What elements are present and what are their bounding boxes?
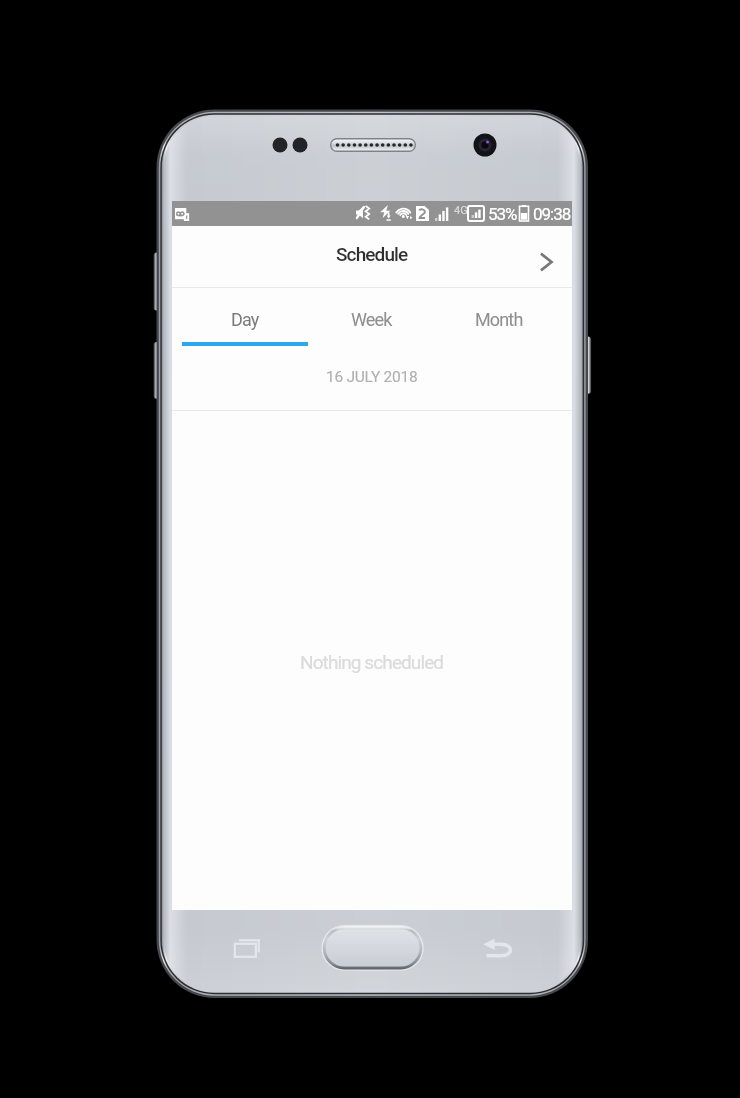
staticText: 16 JULY 2018: [326, 368, 418, 386]
button[interactable]: Open: [526, 242, 566, 282]
button[interactable]: Day: [182, 288, 308, 348]
staticText: 53%: [488, 204, 517, 224]
button[interactable]: Week: [308, 288, 435, 348]
staticText: Month: [475, 309, 523, 330]
button[interactable]: Month: [435, 288, 562, 348]
staticText: Day: [231, 309, 259, 330]
staticText: Schedule: [336, 243, 408, 265]
staticText: Week: [351, 309, 392, 330]
staticText: 4G: [454, 204, 468, 217]
staticText: Nothing scheduled: [300, 651, 444, 673]
staticText: 09:38: [533, 204, 571, 224]
